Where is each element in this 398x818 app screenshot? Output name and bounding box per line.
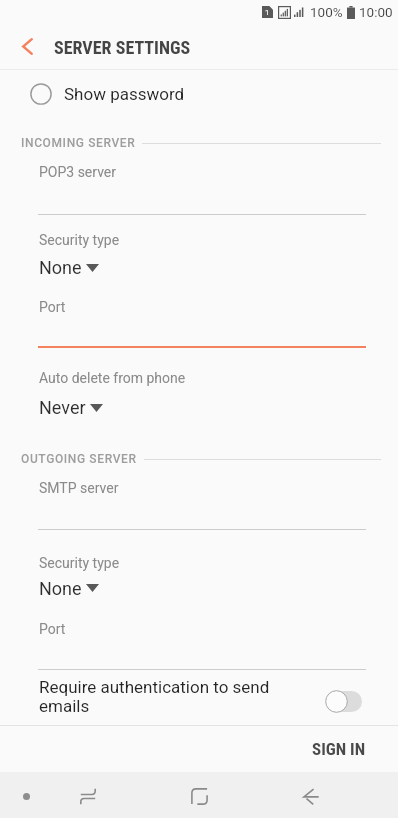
staticText: 100% [310,4,343,20]
staticText: Require authentication to send emails [39,677,289,717]
staticText: SIGN IN [312,739,366,759]
staticText: SMTP server [39,480,119,496]
staticText: POP3 server [39,164,117,180]
button[interactable] [0,70,398,118]
staticText: Security type [39,555,120,571]
button[interactable]: Navigate up [5,24,49,68]
staticText: Auto delete from phone [39,370,186,386]
staticText: None [39,578,82,599]
staticText: Never [39,397,86,418]
button[interactable]: Home [175,774,223,818]
staticText: Security type [39,232,120,248]
button[interactable]: SIGN IN [290,727,388,771]
staticText: INCOMING SERVER [21,136,136,150]
staticText: 1 [265,8,270,17]
staticText: Port [39,299,66,315]
button[interactable] [0,672,398,724]
staticText: 10:00 [359,4,393,20]
button[interactable]: Menu [2,774,50,818]
staticText: Port [39,621,66,637]
button[interactable]: Back [287,774,335,818]
staticText: OUTGOING SERVER [21,452,137,466]
staticText: None [39,257,82,278]
button[interactable]: Recent apps [64,774,112,818]
staticText: SERVER SETTINGS [54,37,191,58]
staticText: Show password [64,84,185,104]
